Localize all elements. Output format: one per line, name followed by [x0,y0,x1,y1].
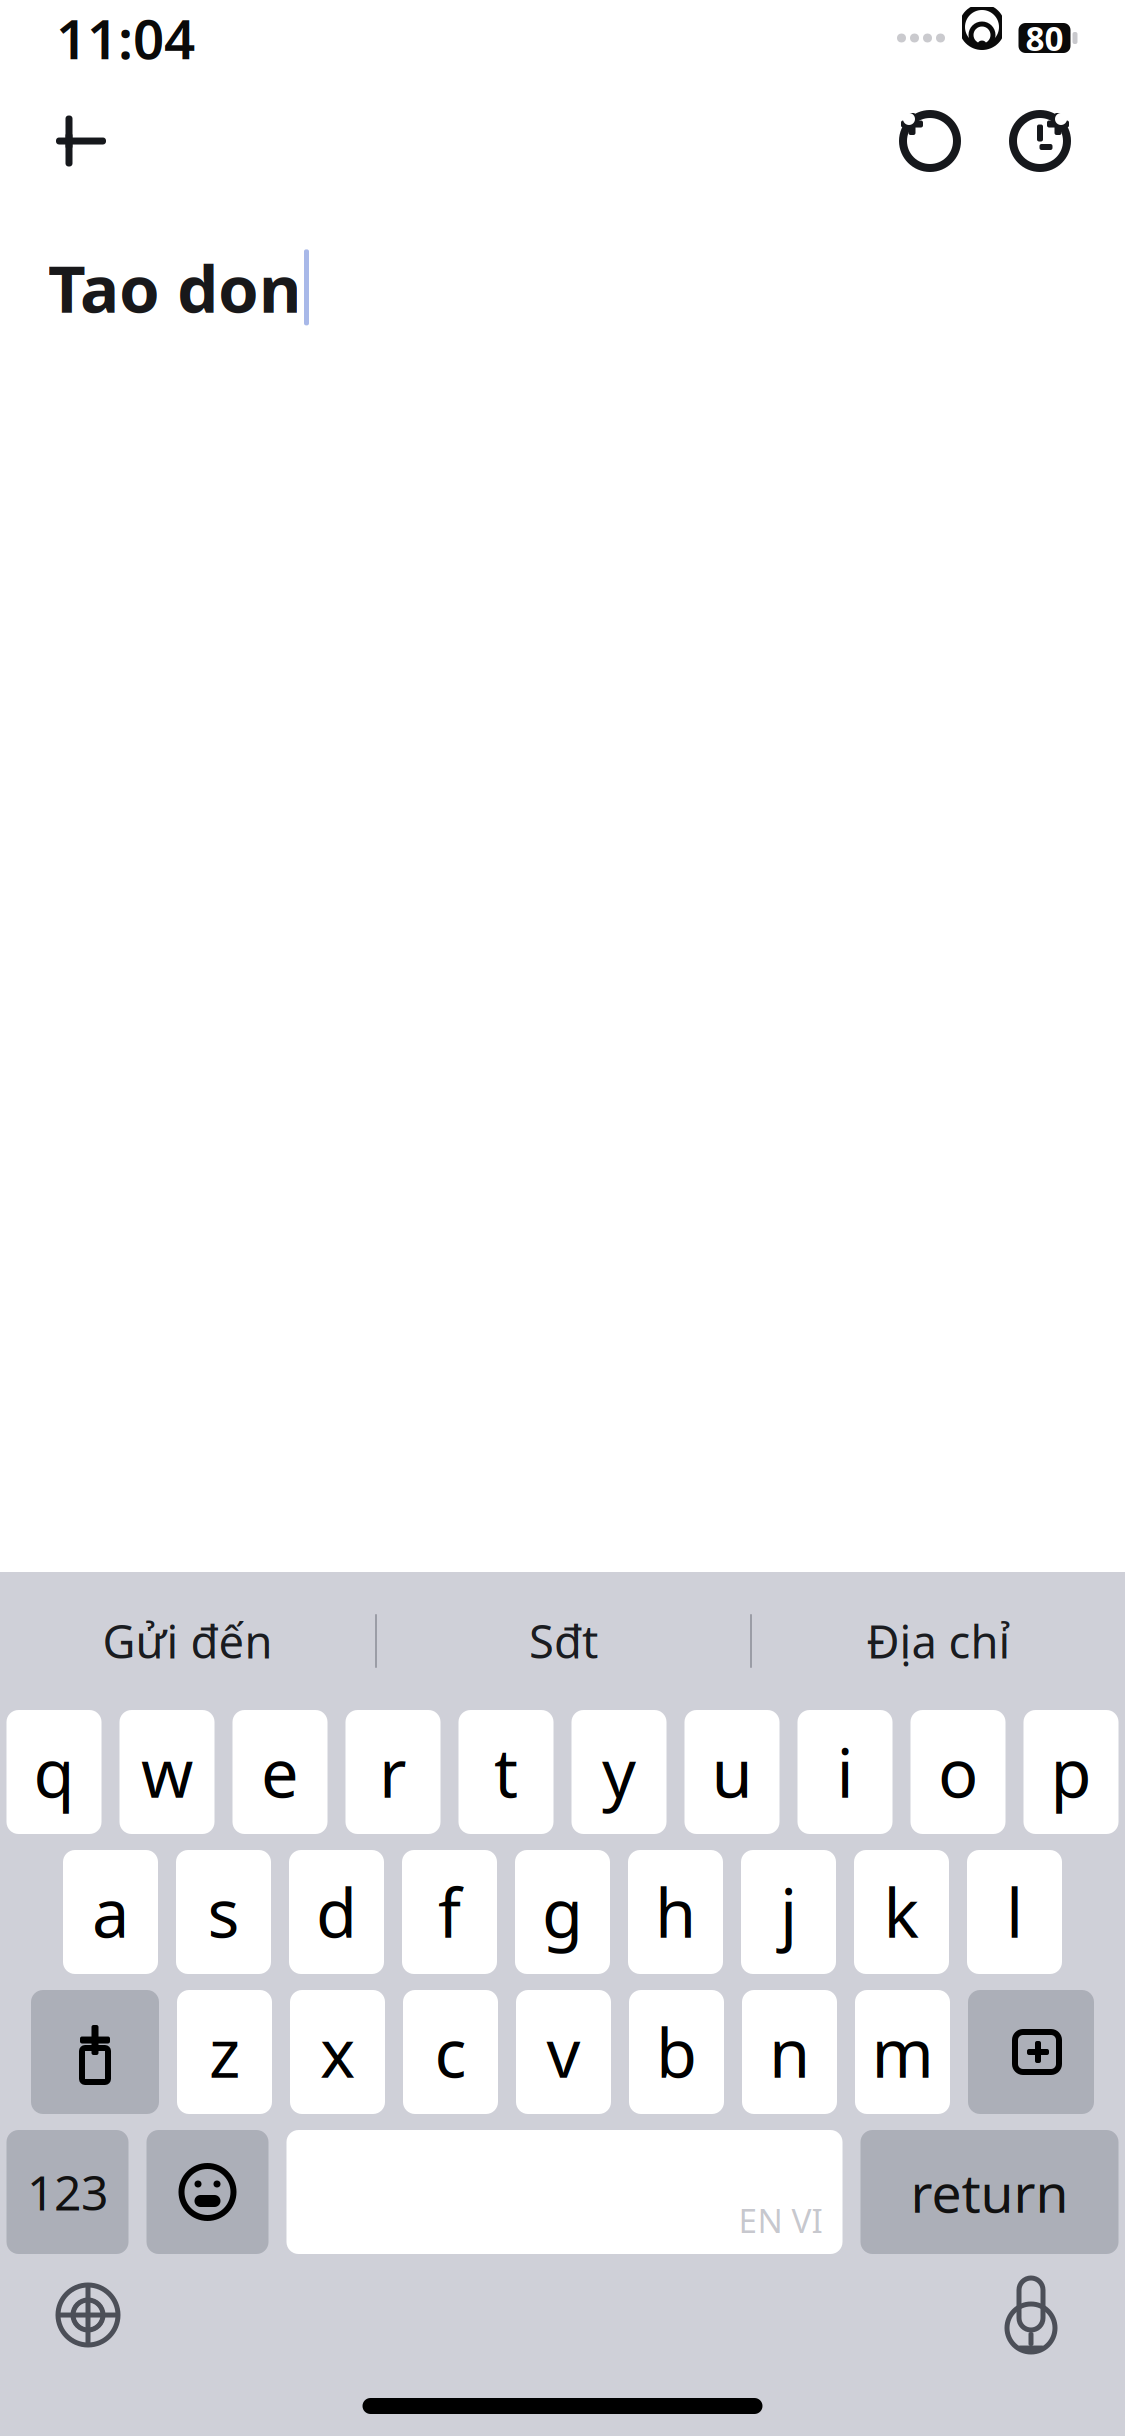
staticText: v [546,2008,580,2096]
staticText: 123 [27,2160,108,2224]
button[interactable]: a [63,1850,158,1974]
staticText: m [871,2008,933,2096]
staticText: c [434,2008,466,2096]
button[interactable]: 123 [6,2130,128,2254]
button[interactable]: Dictate [971,2260,1091,2370]
staticText: s [207,1868,239,1956]
staticText: d [316,1868,357,1956]
button[interactable]: h [628,1850,723,1974]
staticText: Tao don [48,244,301,331]
button[interactable]: History [997,98,1083,184]
staticText: EN VI [738,2198,822,2242]
button[interactable]: Delete [968,1990,1094,2114]
button[interactable]: k [854,1850,949,1974]
button[interactable]: l [967,1850,1062,1974]
staticText: t [494,1728,518,1816]
button[interactable]: t [458,1710,553,1834]
button[interactable]: Next keyboard [28,2260,148,2370]
staticText: q [33,1728,74,1816]
staticText: 11:04 [56,2,195,74]
staticText: y [602,1728,636,1816]
staticText: k [883,1868,919,1956]
staticText: j [780,1868,797,1956]
button[interactable]: i [797,1710,892,1834]
button[interactable]: x [290,1990,385,2114]
button[interactable]: m [855,1990,950,2114]
staticText: h [655,1868,696,1956]
staticText: f [438,1868,461,1956]
button[interactable]: s [176,1850,271,1974]
button[interactable]: Gửi đến [0,1593,375,1689]
button[interactable]: y [571,1710,666,1834]
button[interactable]: d [289,1850,384,1974]
button[interactable]: v [516,1990,611,2114]
button[interactable]: r [345,1710,440,1834]
staticText: g [542,1868,583,1956]
button[interactable]: p [1023,1710,1118,1834]
staticText: w [141,1728,193,1816]
button[interactable]: Sđt [377,1593,750,1689]
button[interactable]: u [684,1710,779,1834]
button[interactable]: g [515,1850,610,1974]
staticText: b [656,2008,697,2096]
staticText: 80 [1025,16,1063,60]
button[interactable]: Back [38,98,124,184]
staticText: l [1006,1868,1023,1956]
staticText: Sđt [529,1611,598,1671]
button[interactable]: Shift [31,1990,159,2114]
staticText: Địa chỉ [866,1611,1010,1671]
button[interactable]: Space [286,2130,842,2254]
button[interactable]: f [402,1850,497,1974]
staticText: i [836,1728,853,1816]
staticText: return [910,2157,1068,2227]
button[interactable]: j [741,1850,836,1974]
button[interactable]: c [403,1990,498,2114]
button[interactable]: o [910,1710,1005,1834]
button[interactable]: q [6,1710,101,1834]
staticText: Gửi đến [102,1611,272,1671]
button[interactable]: b [629,1990,724,2114]
staticText: x [320,2008,355,2096]
staticText: n [769,2008,810,2096]
button[interactable]: n [742,1990,837,2114]
staticText: u [711,1728,752,1816]
staticText: a [92,1868,129,1956]
button[interactable]: Emoji [146,2130,268,2254]
staticText: e [261,1728,299,1816]
button[interactable]: Địa chỉ [752,1593,1125,1689]
staticText: r [379,1728,407,1816]
staticText: z [209,2008,240,2096]
button[interactable]: Undo [887,98,973,184]
button[interactable]: w [119,1710,214,1834]
button[interactable]: return [860,2130,1118,2254]
button[interactable]: z [177,1990,272,2114]
button[interactable]: e [232,1710,327,1834]
staticText: o [938,1728,978,1816]
staticText: p [1050,1728,1091,1816]
